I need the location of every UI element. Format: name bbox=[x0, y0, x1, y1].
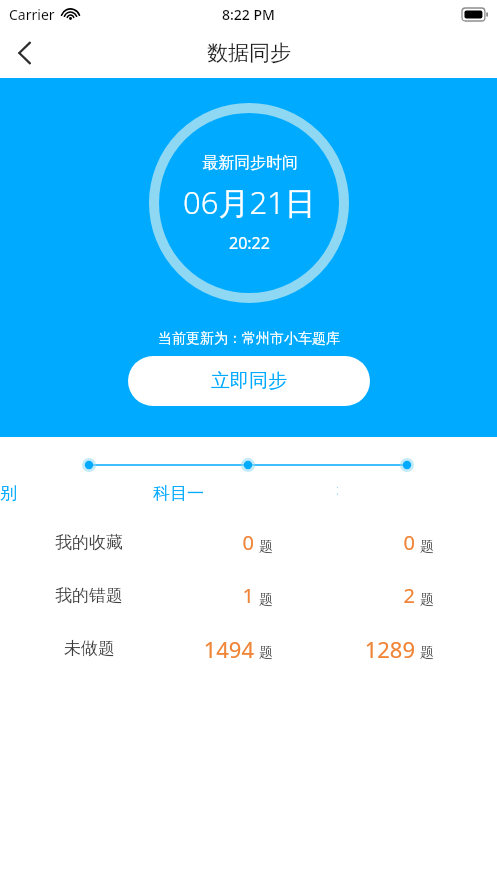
staticText: 数据同步 bbox=[207, 40, 291, 66]
staticText: 我的收藏 bbox=[55, 532, 123, 553]
staticText: 题 bbox=[259, 644, 273, 662]
staticText: 2 bbox=[403, 582, 415, 609]
staticText: 立即同步 bbox=[211, 369, 287, 393]
staticText: 1494 bbox=[203, 634, 254, 662]
staticText: 0 bbox=[403, 529, 415, 556]
staticText: 06月21日 bbox=[183, 181, 316, 223]
staticText: 科目一 bbox=[153, 483, 204, 504]
staticText: 1289 bbox=[364, 634, 415, 662]
staticText: 当前更新为：常州市小车题库 bbox=[158, 330, 340, 348]
staticText: 类别 bbox=[0, 483, 17, 504]
staticText: 0 bbox=[242, 529, 254, 556]
button[interactable]: Back bbox=[0, 29, 48, 77]
button[interactable]: 立即同步 bbox=[128, 356, 370, 406]
staticText: 8:22 PM bbox=[222, 5, 275, 24]
staticText: 题 bbox=[420, 591, 434, 609]
staticText: 题 bbox=[420, 538, 434, 556]
staticText: 我的错题 bbox=[55, 585, 123, 606]
staticText: 题 bbox=[420, 644, 434, 662]
staticText: Carrier bbox=[9, 5, 55, 24]
staticText: 未做题 bbox=[64, 638, 115, 659]
staticText: 20:22 bbox=[229, 232, 270, 254]
staticText: 科目四 bbox=[337, 480, 338, 506]
staticText: 最新同步时间 bbox=[202, 153, 298, 173]
staticText: 题 bbox=[259, 591, 273, 609]
staticText: 1 bbox=[242, 582, 254, 609]
staticText: 题 bbox=[259, 538, 273, 556]
